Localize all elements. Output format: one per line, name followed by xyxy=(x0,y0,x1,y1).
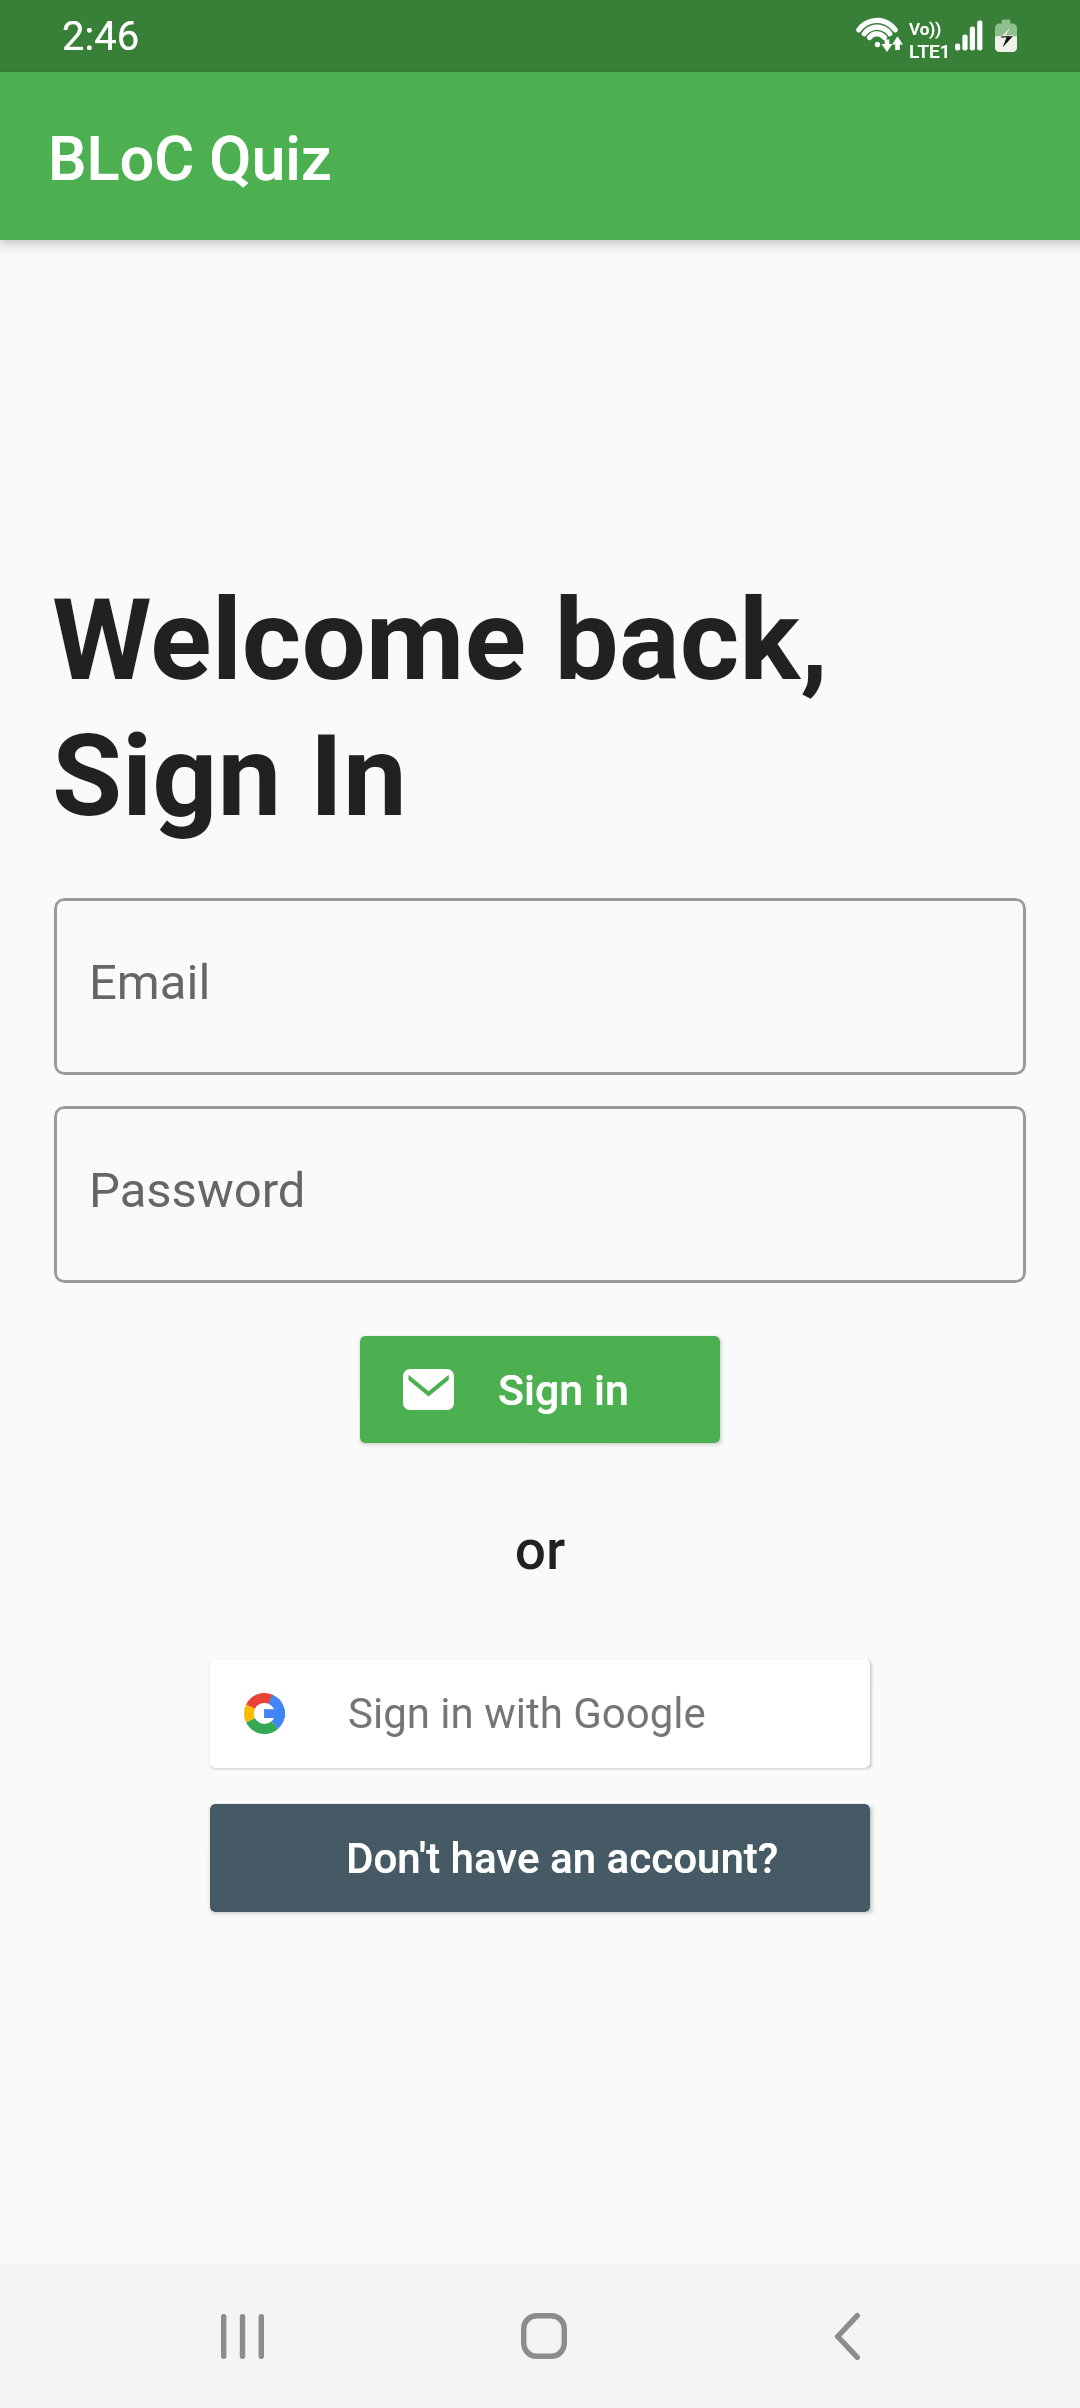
button[interactable]: Sign in with Google xyxy=(210,1659,870,1768)
staticText: Welcome back, Sign In xyxy=(52,573,829,843)
button[interactable]: Home xyxy=(482,2293,606,2379)
staticText: Email xyxy=(89,954,211,1011)
staticText: LTE1 xyxy=(909,40,951,62)
button[interactable]: Email xyxy=(54,898,1026,1075)
staticText: Sign in xyxy=(498,1365,629,1415)
button[interactable]: Password xyxy=(54,1106,1026,1283)
staticText: Vo)) xyxy=(909,19,942,39)
button[interactable]: Recent apps xyxy=(180,2293,304,2379)
staticText: Don't have an account? xyxy=(346,1834,779,1883)
staticText: or xyxy=(0,1518,1080,1582)
staticText: BLoC Quiz xyxy=(48,123,332,194)
staticText: Password xyxy=(89,1162,306,1219)
staticText: Sign in with Google xyxy=(348,1689,706,1738)
button[interactable]: Don't have an account? xyxy=(210,1804,870,1912)
button[interactable]: Back xyxy=(785,2293,909,2379)
button[interactable]: Sign in xyxy=(360,1336,720,1443)
staticText: 2:46 xyxy=(62,13,140,60)
